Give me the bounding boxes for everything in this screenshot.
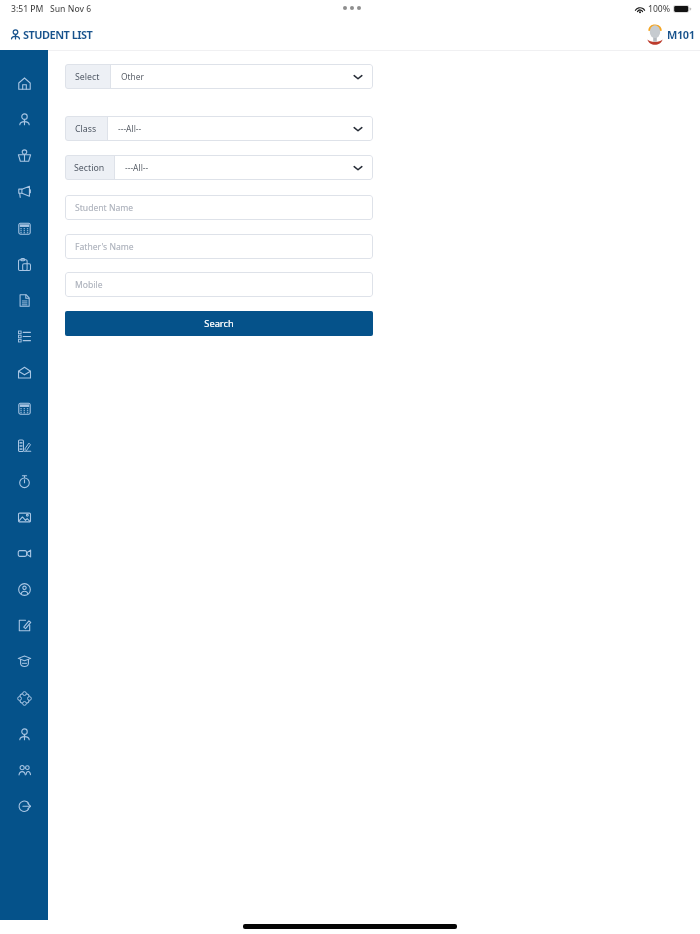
button[interactable]: Messages (7, 355, 41, 389)
staticText: Select (75, 71, 100, 83)
staticText: Father's Name (75, 241, 134, 253)
staticText: ---All-- (118, 123, 353, 134)
button[interactable]: Profile (7, 717, 41, 751)
button[interactable]: Search (65, 311, 373, 336)
button[interactable]: Edit (7, 608, 41, 642)
button[interactable]: Father's Name (65, 234, 373, 259)
button[interactable]: Class (65, 116, 373, 141)
button[interactable]: Attendance (7, 464, 41, 498)
button[interactable]: Mobile (65, 272, 373, 297)
button[interactable]: Home (7, 66, 41, 100)
button[interactable]: Notice Board (7, 174, 41, 208)
button[interactable]: Documents (7, 283, 41, 317)
button[interactable]: Videos (7, 536, 41, 570)
staticText: Other (121, 71, 353, 82)
button[interactable]: Gallery (7, 500, 41, 534)
staticText: 3:51 PM (11, 3, 44, 15)
staticText: Section (74, 162, 105, 174)
button[interactable]: Timetable (7, 391, 41, 425)
button[interactable]: Calendar (7, 211, 41, 245)
button[interactable]: Section (65, 155, 373, 180)
staticText: STUDENT LIST (23, 27, 93, 42)
button[interactable]: Homework (7, 247, 41, 281)
button[interactable]: Staff (7, 753, 41, 787)
button[interactable]: Admission (7, 138, 41, 172)
button[interactable]: Transport (7, 681, 41, 715)
button[interactable]: Account M101 (646, 23, 695, 45)
button[interactable]: Students (7, 102, 41, 136)
staticText: ---All-- (125, 162, 353, 173)
staticText: M101 (667, 27, 695, 42)
staticText: Mobile (75, 279, 103, 291)
button[interactable]: Certificates (7, 644, 41, 678)
button[interactable]: Student Name (65, 195, 373, 220)
button[interactable]: Reports (7, 428, 41, 462)
staticText: 100% (648, 3, 671, 15)
staticText: Class (75, 123, 97, 135)
button[interactable]: Logout (7, 789, 41, 823)
staticText: Student Name (75, 202, 134, 214)
button[interactable]: Syllabus (7, 319, 41, 353)
staticText: Sun Nov 6 (50, 3, 92, 15)
button[interactable]: Account (7, 572, 41, 606)
staticText: Search (204, 317, 234, 330)
button[interactable]: Select (65, 64, 373, 89)
